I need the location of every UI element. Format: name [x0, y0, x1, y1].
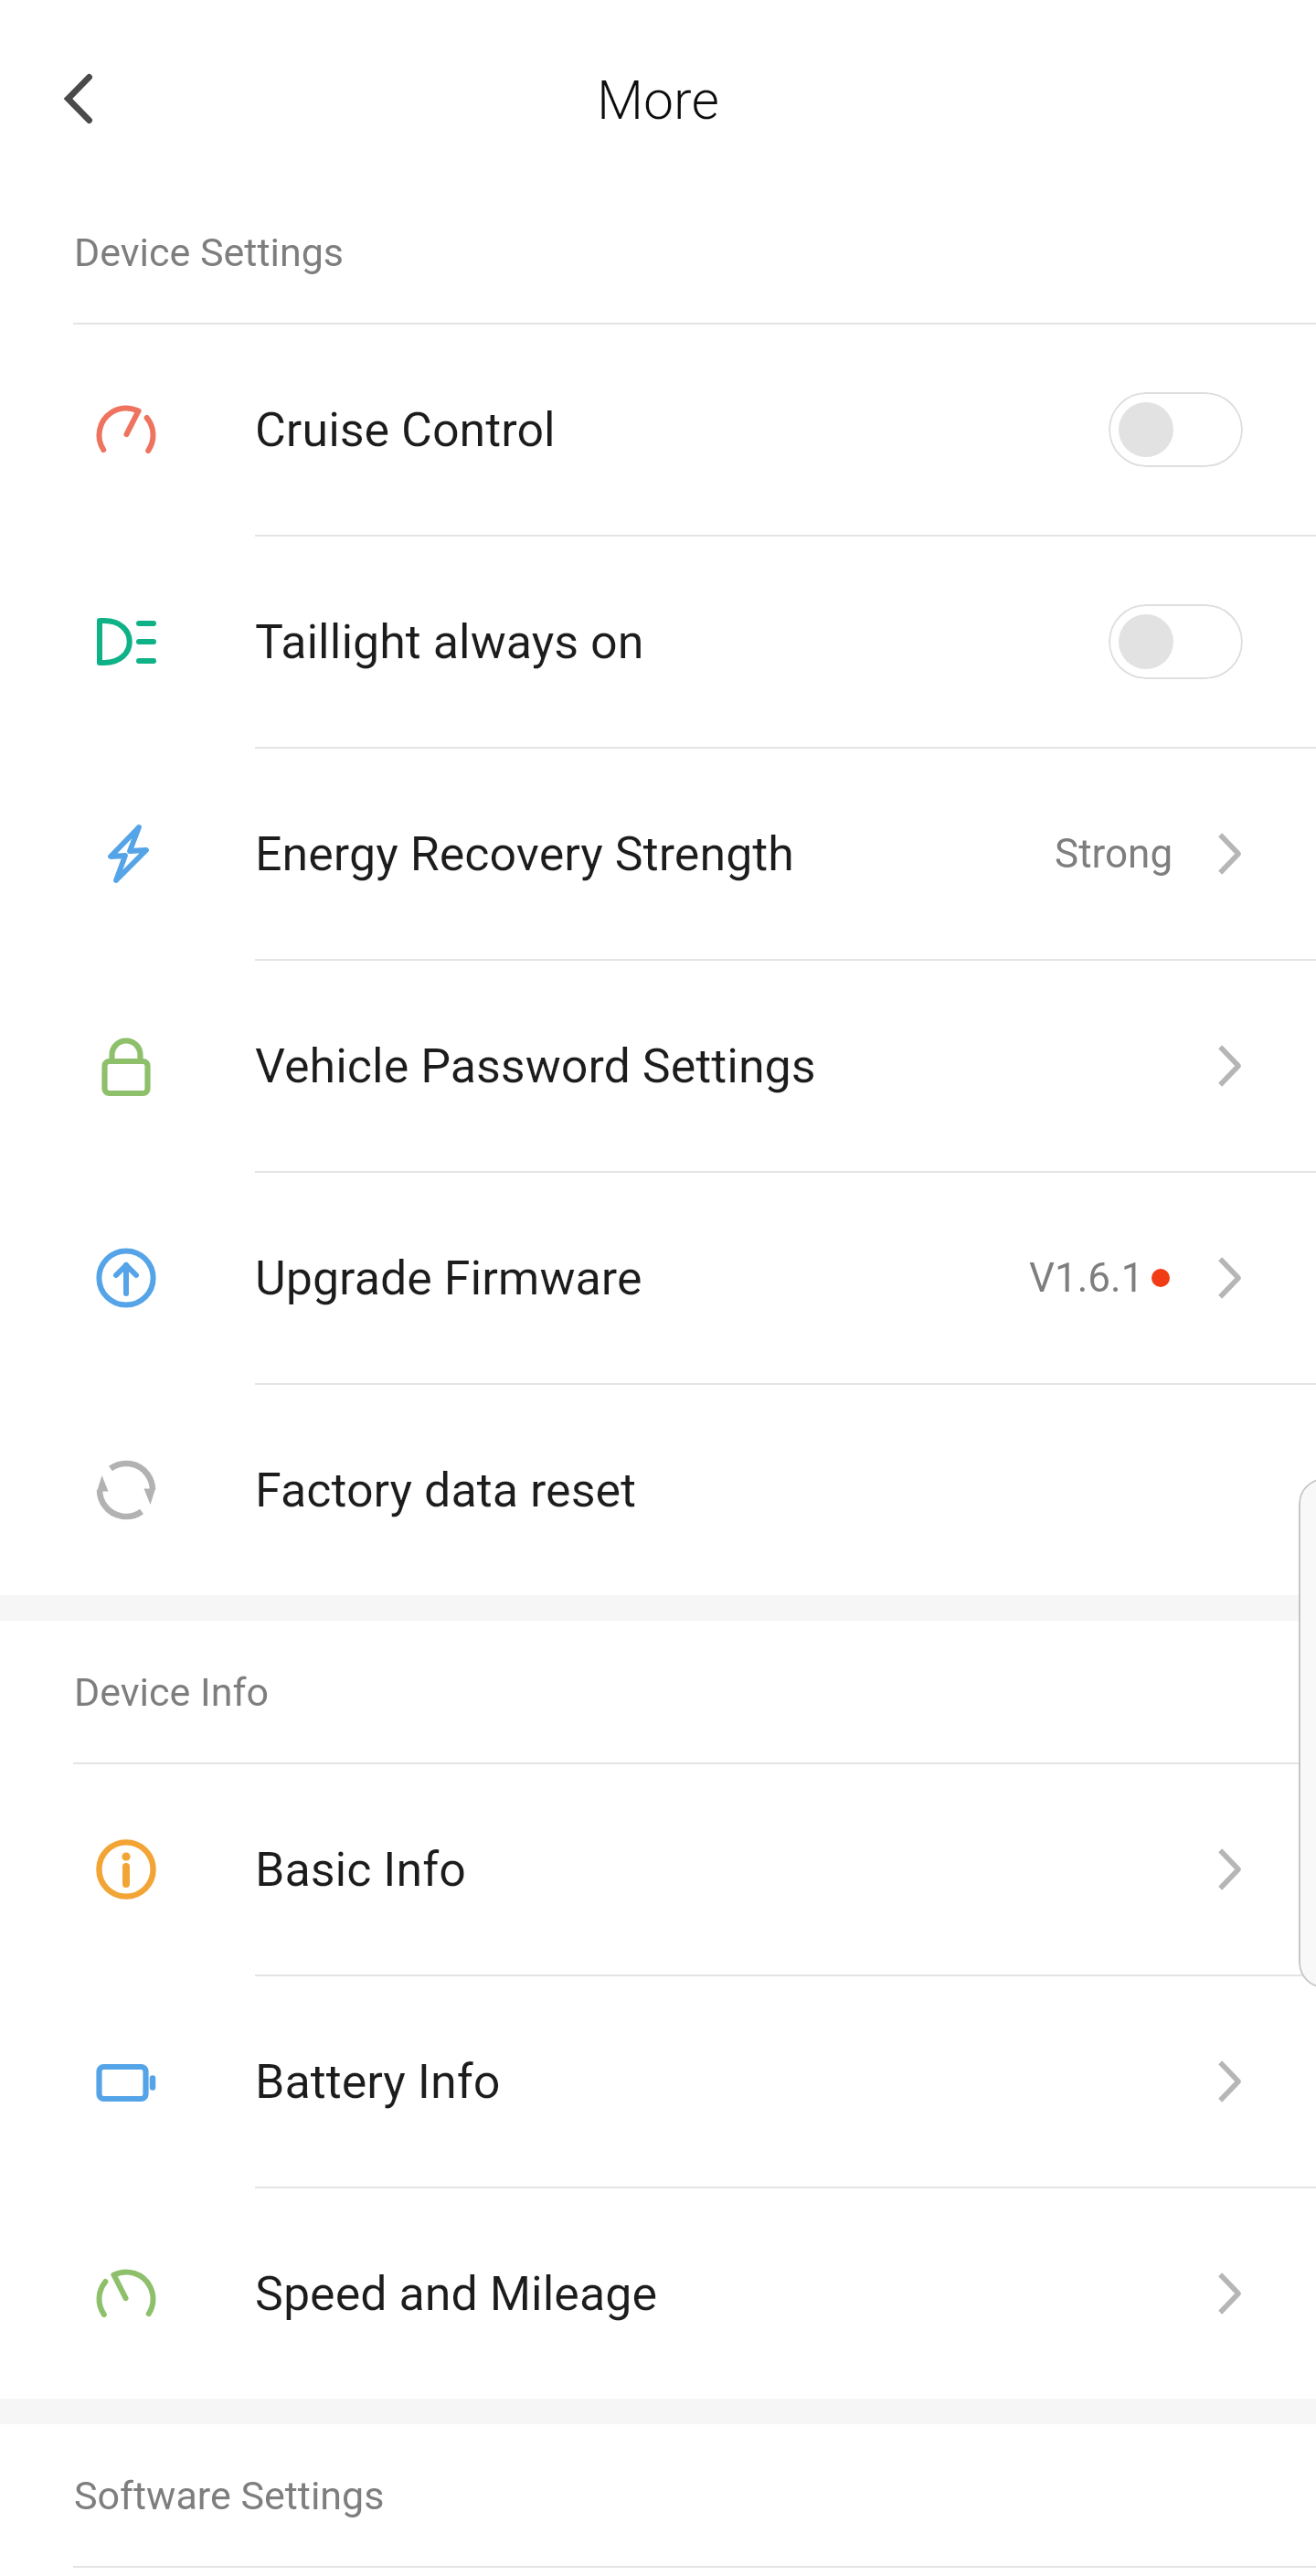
staticText: Energy Recovery Strength: [255, 826, 794, 882]
button[interactable]: Factory data reset: [0, 1385, 1316, 1595]
staticText: Taillight always on: [255, 614, 644, 670]
button[interactable]: Taillight always on: [0, 537, 1316, 747]
staticText: Software Settings: [74, 2473, 385, 2518]
staticText: Vehicle Password Settings: [255, 1038, 816, 1094]
staticText: Basic Info: [255, 1842, 466, 1898]
button[interactable]: Battery Info: [0, 1976, 1316, 2187]
button[interactable]: Energy Recovery Strength: [0, 749, 1316, 959]
staticText: Device Info: [74, 1669, 269, 1715]
button[interactable]: Cruise Control: [0, 325, 1316, 535]
button[interactable]: Upgrade Firmware: [0, 1173, 1316, 1383]
button[interactable]: Speed and Mileage: [0, 2188, 1316, 2399]
staticText: Speed and Mileage: [255, 2266, 657, 2322]
button[interactable]: Toggle: [1109, 604, 1243, 679]
staticText: Cruise Control: [255, 402, 556, 458]
staticText: Device Settings: [74, 229, 345, 275]
button[interactable]: Back: [42, 62, 115, 135]
staticText: Strong: [1055, 830, 1173, 878]
button[interactable]: Vehicle Password Settings: [0, 961, 1316, 1171]
staticText: More: [597, 69, 719, 132]
button[interactable]: Toggle: [1109, 392, 1243, 467]
button[interactable]: Basic Info: [0, 1764, 1316, 1975]
staticText: Upgrade Firmware: [255, 1251, 642, 1306]
staticText: Factory data reset: [255, 1463, 637, 1518]
staticText: V1.6.1: [1029, 1254, 1144, 1302]
staticText: Battery Info: [255, 2054, 501, 2110]
